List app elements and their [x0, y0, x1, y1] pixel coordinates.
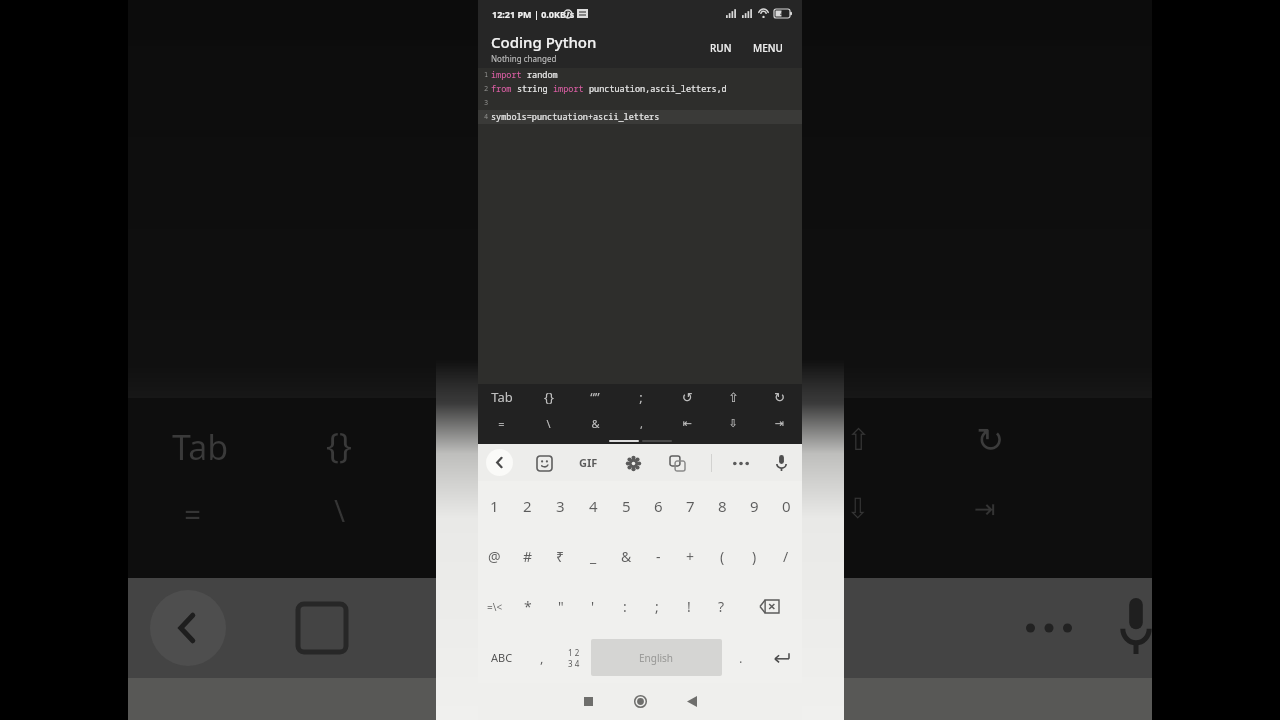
button[interactable]: Stickers — [529, 448, 559, 478]
button[interactable]: 9 — [738, 481, 770, 531]
staticText: & — [621, 547, 632, 566]
button[interactable]: ; — [618, 384, 664, 410]
button[interactable]: English — [591, 639, 722, 676]
button[interactable]: 1 2 — [557, 632, 591, 683]
button[interactable]: ? — [705, 581, 737, 632]
button[interactable]: {} — [525, 384, 572, 410]
staticText: 1 — [484, 70, 489, 80]
button[interactable]: 8 — [706, 481, 738, 531]
staticText: 4 — [484, 112, 489, 122]
button[interactable]: ; — [641, 581, 673, 632]
staticText: 7 — [686, 496, 695, 516]
button[interactable]: 2 — [511, 481, 544, 531]
button[interactable]: Voice input — [766, 448, 796, 478]
button[interactable]: Enter — [759, 632, 802, 683]
staticText: / — [783, 547, 789, 566]
button[interactable]: Backspace — [737, 581, 802, 632]
button[interactable]: ₹ — [544, 531, 577, 581]
staticText: 12:21 PM | 0.0KB/s — [492, 8, 575, 20]
button[interactable]: 1 — [478, 481, 511, 531]
button[interactable]: 0 — [770, 481, 802, 531]
button[interactable]: Recents — [562, 683, 614, 720]
staticText: _ — [590, 547, 597, 566]
button[interactable]: ABC — [478, 632, 526, 683]
button[interactable]: @ — [478, 531, 511, 581]
button[interactable]: ↻ — [756, 384, 802, 410]
staticText: RUN — [710, 41, 732, 55]
staticText: MENU — [753, 41, 783, 55]
staticText: ↻ — [774, 390, 785, 405]
staticText: + — [686, 547, 695, 566]
staticText: - — [656, 547, 661, 566]
button[interactable]: + — [674, 531, 706, 581]
button[interactable]: 3 — [544, 481, 577, 531]
staticText: * — [524, 597, 532, 616]
staticText: ⇩ — [728, 417, 738, 430]
staticText: 2 — [484, 84, 489, 94]
staticText: punctuation,ascii_letters,d — [589, 83, 727, 95]
staticText: . — [739, 649, 743, 667]
staticText: ⇩ — [846, 492, 870, 525]
button[interactable]: ⇤ — [664, 410, 710, 437]
staticText: ⇥ — [774, 417, 784, 430]
staticText: ₹ — [556, 547, 565, 566]
button[interactable]: ' — [577, 581, 609, 632]
staticText: = — [184, 494, 202, 535]
button[interactable]: ) — [738, 531, 770, 581]
button[interactable]: & — [572, 410, 618, 437]
staticText: " — [558, 597, 564, 616]
staticText: 3 — [484, 98, 489, 108]
staticText: string — [517, 83, 553, 95]
button[interactable]: . — [722, 632, 759, 683]
button[interactable]: \ — [525, 410, 572, 437]
button[interactable]: Tab — [478, 384, 525, 410]
button[interactable]: “” — [572, 384, 618, 410]
button[interactable]: # — [511, 531, 544, 581]
button[interactable]: More options — [726, 448, 756, 478]
button[interactable]: - — [642, 531, 674, 581]
staticText: # — [523, 547, 533, 566]
button[interactable]: Home — [614, 683, 666, 720]
button[interactable]: _ — [577, 531, 610, 581]
button[interactable]: RUN — [704, 35, 738, 61]
staticText: Nothing changed — [491, 53, 557, 64]
button[interactable]: 7 — [674, 481, 706, 531]
button[interactable]: Settings — [618, 448, 648, 478]
staticText: ! — [687, 597, 691, 616]
staticText: import — [553, 83, 589, 95]
staticText: 5 — [622, 496, 631, 516]
button[interactable]: Translate — [662, 448, 692, 478]
staticText: Coding Python — [491, 32, 597, 52]
button[interactable]: ⇧ — [710, 384, 756, 410]
button[interactable]: = — [478, 410, 525, 437]
button[interactable]: 5 — [610, 481, 642, 531]
staticText: ⇤ — [682, 417, 692, 430]
staticText: from — [491, 83, 517, 95]
button[interactable]: 4 — [577, 481, 610, 531]
button[interactable]: ⇩ — [710, 410, 756, 437]
staticText: 1 — [490, 496, 499, 516]
staticText: Tab — [172, 424, 229, 470]
button[interactable]: ! — [673, 581, 705, 632]
staticText: ↻ — [976, 420, 1005, 460]
staticText: 3 4 — [568, 658, 580, 669]
button[interactable]: GIF — [573, 449, 604, 476]
button[interactable]: =\< — [478, 581, 511, 632]
button[interactable]: ( — [706, 531, 738, 581]
button[interactable]: " — [544, 581, 577, 632]
staticText: 46 — [780, 10, 787, 18]
button[interactable]: , — [526, 632, 557, 683]
staticText: 3 — [556, 496, 565, 516]
button[interactable]: , — [618, 410, 664, 437]
button[interactable]: ⇥ — [756, 410, 802, 437]
button[interactable]: & — [610, 531, 642, 581]
button[interactable]: 6 — [642, 481, 674, 531]
button[interactable]: Back — [486, 449, 513, 476]
button[interactable]: : — [609, 581, 641, 632]
button[interactable]: * — [511, 581, 544, 632]
button[interactable]: MENU — [747, 35, 789, 61]
button[interactable]: ↺ — [664, 384, 710, 410]
staticText: 9 — [750, 496, 759, 516]
button[interactable]: / — [770, 531, 802, 581]
button[interactable]: Back — [666, 683, 718, 720]
